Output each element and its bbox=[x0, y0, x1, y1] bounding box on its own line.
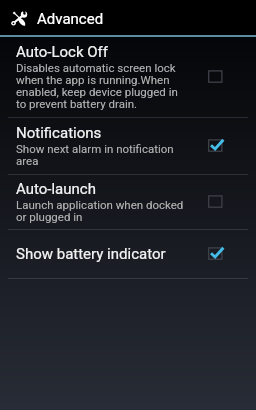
staticText: Auto-Lock Off bbox=[16, 44, 108, 60]
button[interactable]: Auto-launch bbox=[0, 175, 256, 229]
button[interactable]: Unchecked bbox=[200, 187, 232, 217]
staticText: Show battery indicator bbox=[16, 246, 166, 262]
button[interactable]: Show battery indicator bbox=[0, 230, 256, 278]
staticText: Launch application when docked or plugge… bbox=[16, 199, 187, 223]
staticText: Advanced bbox=[37, 10, 104, 28]
button[interactable]: Checked bbox=[200, 239, 232, 269]
button[interactable]: Notifications bbox=[0, 118, 256, 174]
other: Tools bbox=[10, 10, 28, 26]
button[interactable]: Auto-Lock Off bbox=[0, 37, 256, 117]
staticText: Notifications bbox=[16, 125, 102, 141]
staticText: Auto-launch bbox=[16, 181, 96, 197]
button[interactable]: Checked bbox=[200, 131, 232, 161]
button[interactable]: Unchecked bbox=[200, 62, 232, 92]
staticText: Show next alarm in notification area bbox=[16, 143, 187, 167]
staticText: Disables automatic screen lock when the … bbox=[16, 62, 187, 110]
